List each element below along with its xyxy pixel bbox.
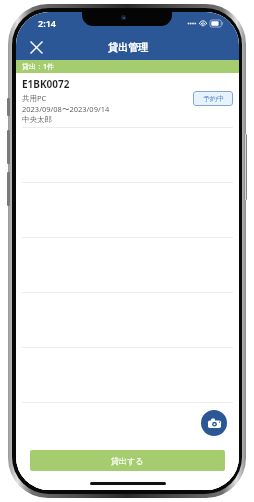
button[interactable]: E1BK0072	[16, 73, 239, 128]
button[interactable]: Close	[24, 35, 48, 59]
staticText: 共用PC	[22, 93, 47, 103]
staticText: 2023/09/08〜2023/09/14	[22, 104, 110, 114]
staticText: 予約中	[203, 94, 224, 103]
staticText: 貸出する	[111, 456, 144, 466]
staticText: E1BK0072	[22, 77, 70, 91]
staticText: 中央太郎	[22, 115, 52, 124]
button[interactable]: 貸出する	[30, 450, 225, 471]
staticText: 2:14	[38, 17, 56, 29]
staticText: 貸出管理	[108, 41, 148, 54]
button[interactable]: Scan with camera	[201, 410, 227, 436]
button[interactable]: 予約中	[193, 91, 233, 106]
staticText: 貸出：1件	[22, 62, 55, 72]
